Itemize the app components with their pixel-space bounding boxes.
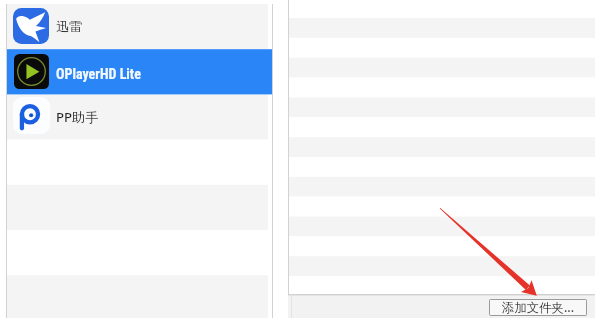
- button[interactable]: PP助手: [6, 94, 273, 139]
- button[interactable]: OPlayerHD Lite: [6, 49, 273, 94]
- staticText: 迅雷: [56, 18, 83, 35]
- staticText: PP助手: [56, 108, 99, 126]
- button[interactable]: 迅雷: [6, 4, 273, 49]
- button[interactable]: 添加文件夹...: [489, 299, 587, 316]
- staticText: OPlayerHD Lite: [56, 66, 141, 82]
- staticText: 添加文件夹...: [502, 299, 575, 316]
